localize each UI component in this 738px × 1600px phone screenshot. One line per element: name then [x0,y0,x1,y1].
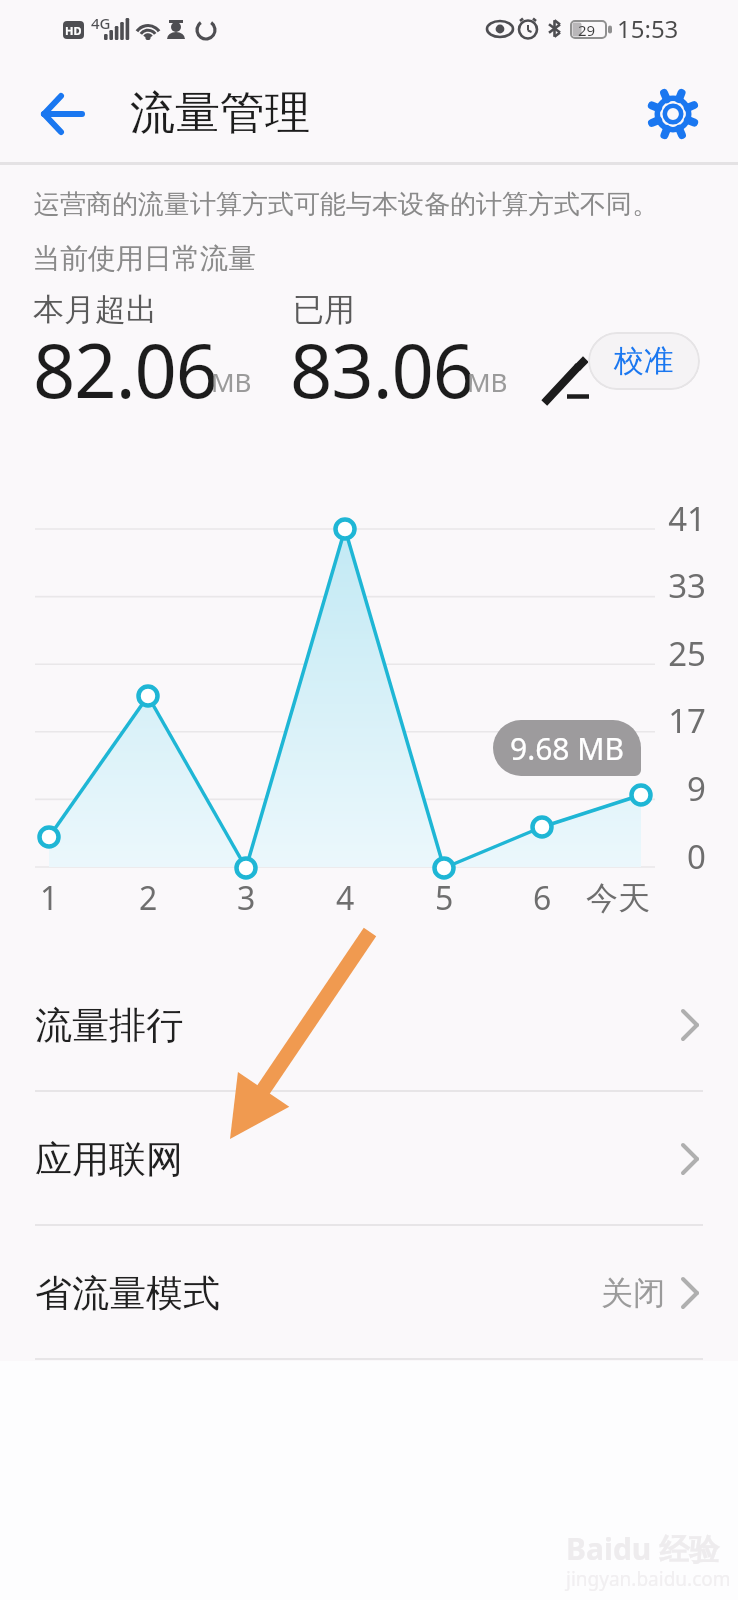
staticText: 82.06 [33,319,218,420]
button[interactable] [36,87,90,141]
staticText: 省流量模式 [35,1270,220,1317]
staticText: 41 [668,496,706,541]
staticText: 本月超出 [33,290,157,329]
staticText: 2 [139,876,158,920]
staticText: 关闭 [601,1273,665,1313]
staticText: 9.68 MB [510,728,625,769]
staticText: HD [65,23,82,38]
staticText: 应用联网 [35,1136,183,1183]
button[interactable] [543,350,603,410]
staticText: jingyan.baidu.com [566,1566,731,1592]
staticText: 83.06 [290,319,475,420]
staticText: 9 [687,766,706,811]
staticText: 5 [435,876,454,920]
staticText: MB [467,364,508,399]
staticText: 0 [687,834,706,879]
staticText: 运营商的流量计算方式可能与本设备的计算方式不同。 [34,188,658,221]
staticText: 33 [668,563,706,608]
staticText: 今天 [586,878,650,918]
button[interactable]: 流量排行 [0,958,738,1092]
staticText: 4 [336,876,355,920]
staticText: 当前使用日常流量 [32,241,256,276]
staticText: 15:53 [617,12,679,45]
staticText: 流量管理 [130,85,310,142]
staticText: 17 [668,698,706,743]
staticText: 6 [533,876,552,920]
button[interactable] [646,87,700,141]
staticText: 25 [668,631,706,676]
staticText: 3 [237,876,256,920]
staticText: 校准 [614,342,674,380]
staticText: MB [211,364,252,399]
staticText: 29 [578,20,596,40]
button[interactable]: 校准 [588,332,700,390]
button[interactable]: 应用联网 [0,1092,738,1226]
staticText: 4G [91,13,111,33]
button[interactable]: 省流量模式 [0,1226,738,1360]
staticText: Baidu 经验 [566,1528,720,1569]
staticText: 流量排行 [35,1002,183,1049]
staticText: 已用 [293,290,355,329]
staticText: 1 [40,876,59,920]
